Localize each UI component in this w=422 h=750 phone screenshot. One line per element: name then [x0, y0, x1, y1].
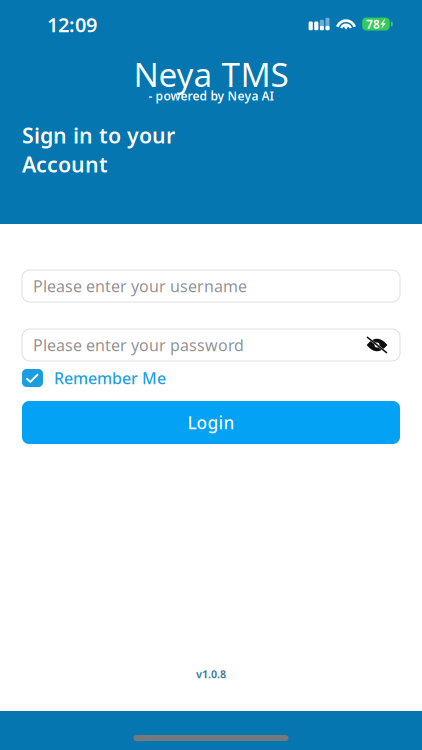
- staticText: Please enter your password: [33, 334, 244, 356]
- staticText: 12:09: [47, 11, 97, 38]
- staticText: v1.0.8: [196, 667, 226, 681]
- staticText: Remember Me: [54, 367, 166, 389]
- staticText: - powered by Neya AI: [148, 88, 273, 104]
- staticText: 78: [366, 16, 380, 32]
- staticText: Account: [22, 150, 108, 178]
- button[interactable]: Show password: [360, 329, 394, 361]
- button[interactable]: Login: [22, 401, 400, 444]
- staticText: Please enter your username: [33, 275, 247, 297]
- staticText: Sign in to your: [22, 121, 175, 149]
- button[interactable]: Remember Me: [22, 369, 222, 387]
- staticText: Login: [187, 411, 234, 434]
- staticText: Neya TMS: [133, 52, 288, 96]
